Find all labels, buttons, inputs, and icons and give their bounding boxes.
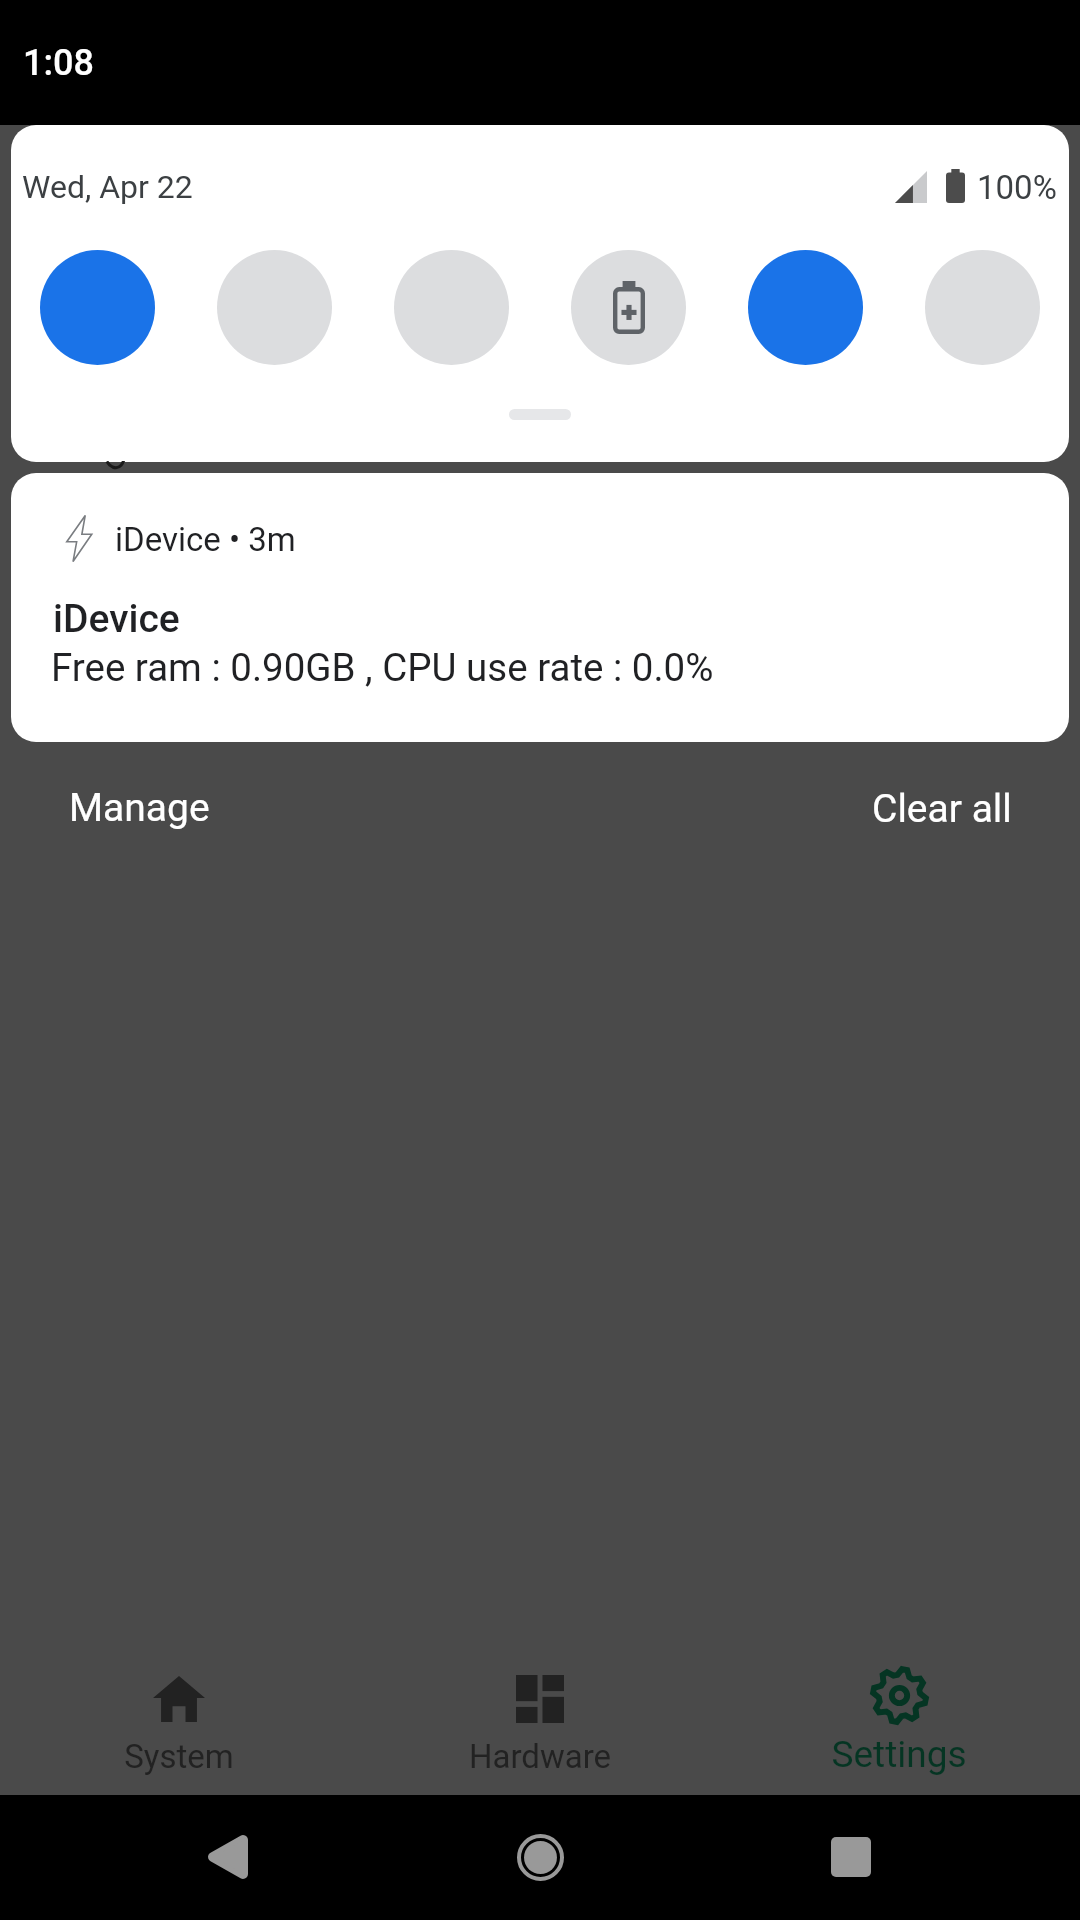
staticText: iDevice — [53, 596, 180, 642]
button[interactable]: Clear all — [856, 774, 1028, 844]
button[interactable]: Settings — [749, 1648, 1049, 1795]
staticText: System — [76, 1737, 282, 1776]
button[interactable]: System — [29, 1648, 329, 1795]
button[interactable]: Quick setting tile — [925, 250, 1040, 365]
button[interactable]: Home — [492, 1809, 588, 1905]
staticText: Clear all — [872, 786, 1012, 832]
staticText: Free ram : 0.90GB , CPU use rate : 0.0% — [51, 645, 714, 690]
button[interactable]: Back — [178, 1809, 274, 1905]
button[interactable]: Battery saver — [571, 250, 686, 365]
staticText: iDevice • 3m — [115, 520, 296, 559]
staticText: Wed, Apr 22 — [22, 168, 193, 206]
staticText: 1:08 — [23, 42, 94, 84]
button[interactable]: Quick setting tile — [748, 250, 863, 365]
button[interactable]: Hardware — [390, 1648, 690, 1795]
button[interactable]: Quick setting tile — [394, 250, 509, 365]
staticText: Hardware — [405, 1737, 675, 1776]
staticText: 100% — [977, 168, 1057, 207]
staticText: Settings — [766, 1733, 1032, 1776]
button[interactable]: Manage — [53, 773, 226, 843]
button[interactable]: Recent apps — [803, 1809, 899, 1905]
button[interactable]: iDevice • 3m — [11, 473, 1069, 742]
staticText: Manage — [69, 785, 210, 831]
button[interactable]: Quick setting tile — [40, 250, 155, 365]
button[interactable]: Quick setting tile — [217, 250, 332, 365]
